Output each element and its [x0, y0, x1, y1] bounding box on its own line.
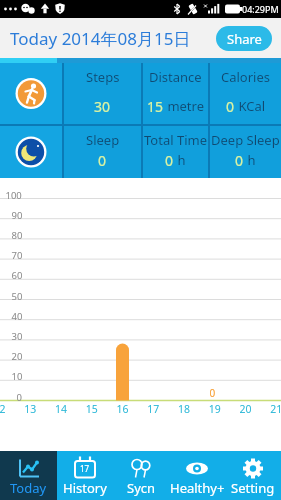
button[interactable]: Today: [0, 451, 57, 500]
button[interactable]: Share: [216, 26, 272, 51]
staticText: Today 2014年08月15日: [10, 27, 191, 50]
staticText: Deep Sleep: [211, 131, 280, 149]
staticText: 17: [80, 463, 90, 474]
staticText: Today: [10, 479, 47, 497]
button[interactable]: 17: [57, 451, 113, 500]
staticText: 04:29PM: [242, 3, 279, 15]
staticText: Distance: [149, 68, 202, 86]
staticText: 0: [98, 151, 107, 170]
staticText: 0: [235, 151, 244, 170]
staticText: h: [244, 151, 256, 169]
staticText: Healthy+: [170, 479, 225, 497]
staticText: Setting: [231, 479, 275, 497]
staticText: KCal: [235, 97, 266, 115]
staticText: Share: [227, 30, 262, 48]
staticText: h: [174, 151, 186, 169]
button[interactable]: Healthy+: [169, 451, 225, 500]
staticText: 0: [165, 151, 174, 170]
staticText: 15: [147, 97, 164, 116]
staticText: Calories: [221, 68, 271, 86]
staticText: 0: [226, 97, 235, 116]
staticText: Total Time: [144, 131, 207, 149]
staticText: Sleep: [86, 131, 120, 149]
staticText: History: [63, 479, 107, 497]
button[interactable]: Sycn: [113, 451, 169, 500]
button[interactable]: Setting: [225, 451, 281, 500]
staticText: 30: [94, 97, 111, 116]
staticText: Sycn: [127, 479, 156, 497]
staticText: Steps: [86, 68, 120, 86]
staticText: metre: [164, 97, 205, 115]
